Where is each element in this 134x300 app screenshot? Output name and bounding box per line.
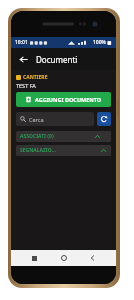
button[interactable]: Recenti: [27, 251, 41, 265]
staticText: SEGNALAZIONE PROBLEMI SPECIFICI (1): [20, 147, 60, 154]
button[interactable]: Indietro: [86, 251, 100, 265]
button[interactable]: Cerca: [16, 112, 94, 126]
staticText: AGGIUNGI DOCUMENTO: [35, 96, 102, 103]
staticText: CANTIERE: [23, 74, 48, 81]
button[interactable]: Indietro: [16, 52, 30, 66]
staticText: 100%: [93, 39, 106, 46]
staticText: Documenti: [36, 54, 78, 65]
button[interactable]: Home: [57, 251, 71, 265]
button[interactable]: AGGIUNGI DOCUMENTO: [16, 92, 111, 107]
staticText: ASSOCIATI (0): [20, 133, 54, 140]
button[interactable]: SEGNALAZIONE PROBLEMI SPECIFICI (1): [16, 145, 111, 156]
button[interactable]: Aggiorna: [97, 112, 111, 126]
staticText: Cerca: [29, 116, 44, 123]
button[interactable]: ASSOCIATI (0): [16, 131, 111, 142]
staticText: 10:01: [15, 39, 28, 46]
staticText: TEST FA: [16, 82, 36, 89]
